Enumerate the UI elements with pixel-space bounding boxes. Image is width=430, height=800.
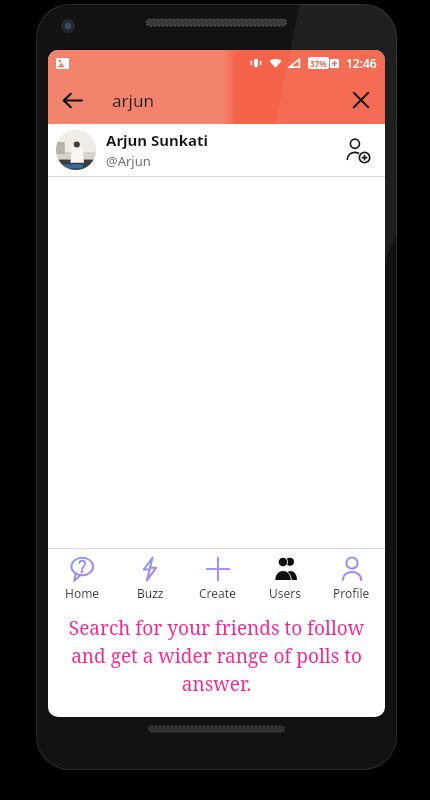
staticText: Create: [199, 585, 236, 601]
button[interactable]: Back: [48, 76, 96, 124]
staticText: Buzz: [137, 585, 164, 601]
button[interactable]: Follow user: [337, 130, 377, 170]
staticText: Profile: [333, 585, 370, 601]
staticText: @Arjun: [106, 152, 151, 170]
staticText: Users: [269, 585, 301, 601]
staticText: Search for your friends to follow and ge…: [58, 615, 375, 697]
button[interactable]: Clear search: [337, 76, 385, 124]
button[interactable]: Users: [251, 552, 318, 604]
staticText: Home: [65, 585, 100, 601]
button[interactable]: Home: [48, 552, 116, 604]
staticText: arjun: [112, 89, 154, 112]
staticText: Arjun Sunkati: [106, 130, 209, 150]
button[interactable]: Create: [184, 552, 251, 604]
staticText: 12:46: [346, 55, 377, 71]
button[interactable]: Arjun Sunkati: [48, 124, 385, 176]
staticText: 37%: [310, 58, 327, 69]
button[interactable]: Buzz: [116, 552, 184, 604]
button[interactable]: Profile: [318, 552, 385, 604]
